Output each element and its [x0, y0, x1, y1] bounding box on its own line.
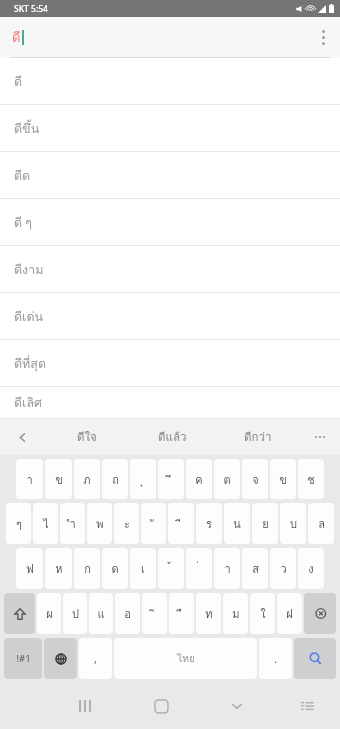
button[interactable]: ย [252, 503, 278, 544]
staticText: ดีแล้ว [158, 428, 187, 446]
staticText: ง [308, 560, 314, 577]
button[interactable]: ค [186, 459, 212, 499]
button[interactable]: ดีขึ้น [0, 105, 340, 152]
staticText: ล [318, 515, 325, 532]
staticText: ค [195, 471, 203, 488]
staticText: !#1 [16, 652, 31, 665]
button[interactable]: Key [294, 638, 336, 679]
button[interactable]: เ [130, 548, 156, 589]
staticText: ผ [46, 605, 53, 622]
button[interactable]: Key [44, 638, 77, 679]
button[interactable]: จ [242, 459, 268, 499]
button[interactable]: ฟ [16, 548, 43, 589]
button[interactable]: ห [45, 548, 72, 589]
button[interactable]: ต [214, 459, 240, 499]
button[interactable]: ่ [186, 548, 212, 589]
button[interactable]: Recents [47, 683, 123, 729]
staticText: ดีเด่น [14, 307, 44, 327]
staticText: ร [206, 515, 212, 532]
staticText: ม [232, 605, 240, 622]
button[interactable]: ช [298, 459, 324, 499]
button[interactable]: ึ [158, 459, 184, 499]
button[interactable]: ม [223, 593, 248, 634]
button[interactable]: Keyboard layout [275, 683, 340, 729]
button[interactable]: ร [196, 503, 222, 544]
staticText: SKT 5:54 [14, 3, 48, 15]
staticText: แ [97, 605, 105, 622]
button[interactable]: . [259, 638, 292, 679]
button[interactable]: ใ [250, 593, 275, 634]
button[interactable]: ดีแล้ว [130, 419, 215, 455]
button[interactable]: พ [87, 503, 112, 544]
button[interactable]: ดีใจ [44, 419, 130, 455]
staticText: ดีเลิศ [14, 393, 42, 413]
button[interactable]: Previous [0, 419, 44, 455]
button[interactable]: ด [102, 548, 128, 589]
button[interactable]: More options [306, 17, 340, 58]
button[interactable]: ฝ [277, 593, 302, 634]
staticText: ส [252, 560, 259, 577]
staticText: ดีใจ [77, 428, 97, 446]
staticText: ดีขึ้น [14, 119, 40, 139]
button[interactable]: ล [308, 503, 334, 544]
button[interactable]: ้ [158, 548, 184, 589]
staticText: ก [84, 560, 91, 577]
staticText: ดี [14, 72, 23, 92]
button[interactable]: ื [169, 593, 194, 634]
staticText: ว [280, 560, 287, 577]
button[interactable]: ดีเลิศ [0, 387, 340, 419]
button[interactable]: Hide keyboard [199, 683, 275, 729]
button[interactable]: ดี [0, 58, 340, 105]
button[interactable]: ภ [74, 459, 100, 499]
button[interactable]: !#1 [4, 638, 42, 679]
button[interactable]: ไทย [114, 638, 257, 679]
staticText: ดีที่สุด [14, 354, 47, 374]
button[interactable]: ำ [60, 503, 85, 544]
button[interactable]: ผ [37, 593, 61, 634]
button[interactable]: ั [141, 503, 166, 544]
staticText: ถ [112, 471, 119, 488]
button[interactable]: น [224, 503, 250, 544]
button[interactable]: , [79, 638, 112, 679]
staticText: า [224, 560, 231, 577]
button[interactable]: ุ [130, 459, 156, 499]
button[interactable]: ว [270, 548, 296, 589]
button[interactable]: ไ [33, 503, 58, 544]
button[interactable]: ิ [142, 593, 167, 634]
button[interactable]: า [214, 548, 240, 589]
staticText: ช [307, 471, 315, 488]
button[interactable]: ข [270, 459, 296, 499]
button[interactable]: ส [242, 548, 268, 589]
button[interactable]: ดีกว่า [215, 419, 300, 455]
button[interactable]: Key [304, 593, 336, 634]
staticText: เ [141, 560, 145, 577]
button[interactable]: ดีเด่น [0, 293, 340, 340]
button[interactable]: ท [196, 593, 221, 634]
button[interactable]: แ [89, 593, 113, 634]
staticText: , [94, 651, 97, 666]
button[interactable]: ดี ๆ [0, 199, 340, 246]
button[interactable]: Key [4, 593, 35, 634]
button[interactable]: ะ [114, 503, 139, 544]
button[interactable]: ง [298, 548, 324, 589]
button[interactable]: บ [280, 503, 306, 544]
staticText: น [233, 515, 241, 532]
button[interactable]: ดีด [0, 152, 340, 199]
staticText: ต [223, 471, 231, 488]
staticText: ภ [83, 471, 91, 488]
button[interactable]: ป [63, 593, 87, 634]
button[interactable]: ข [45, 459, 72, 499]
button[interactable]: ถ [102, 459, 128, 499]
staticText: ดีด [14, 166, 31, 186]
button[interactable]: า [16, 459, 43, 499]
button[interactable]: ดีที่สุด [0, 340, 340, 387]
button[interactable]: ดีงาม [0, 246, 340, 293]
button[interactable]: ี [168, 503, 194, 544]
button[interactable]: อ [115, 593, 140, 634]
staticText: ป [72, 605, 79, 622]
button[interactable]: More suggestions [300, 419, 340, 455]
button[interactable]: Home [123, 683, 199, 729]
button[interactable]: ๆ [6, 503, 31, 544]
staticText: อ [124, 605, 131, 622]
button[interactable]: ก [74, 548, 100, 589]
